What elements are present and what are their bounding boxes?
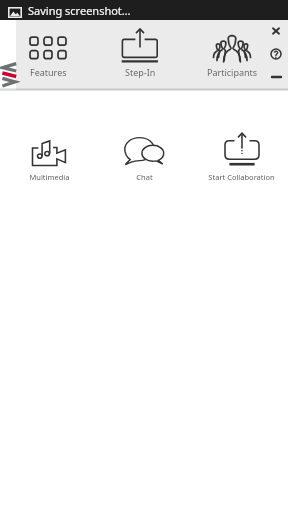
button[interactable]: Chat	[98, 120, 190, 182]
staticText: Step-In	[125, 66, 156, 78]
button[interactable]: Start Collaboration	[195, 120, 287, 182]
button[interactable]: Features	[14, 20, 82, 90]
button[interactable]: Participants	[198, 20, 266, 90]
staticText: Features	[30, 66, 67, 78]
staticText: Participants	[207, 66, 258, 78]
button[interactable]: Minimize	[266, 67, 286, 87]
button[interactable]: Help	[266, 44, 286, 64]
staticText: Saving screenshot…	[28, 3, 131, 18]
staticText: Multimedia	[29, 172, 70, 182]
button[interactable]: Step-In	[106, 20, 174, 90]
button[interactable]: Close	[266, 21, 286, 41]
staticText: Start Collaboration	[208, 172, 275, 182]
button[interactable]: Multimedia	[3, 120, 95, 182]
staticText: Chat	[136, 172, 153, 182]
